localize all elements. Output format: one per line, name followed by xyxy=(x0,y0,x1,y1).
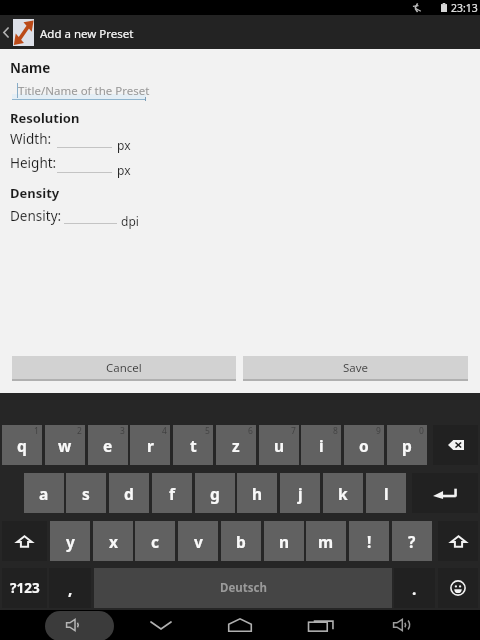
button[interactable]: Cancel xyxy=(12,356,236,382)
staticText: dpi xyxy=(121,213,139,229)
button[interactable]: d xyxy=(109,473,149,513)
staticText: , xyxy=(68,578,73,599)
staticText: q xyxy=(17,435,27,456)
staticText: 7 xyxy=(291,425,296,437)
button[interactable]: z xyxy=(216,425,256,465)
staticText: 2 xyxy=(77,425,82,437)
button[interactable]: r xyxy=(130,425,170,465)
staticText: w xyxy=(58,435,72,456)
staticText: g xyxy=(210,483,220,504)
staticText: Cancel xyxy=(106,360,142,376)
staticText: 23:13 xyxy=(451,1,478,15)
staticText: Deutsch xyxy=(220,580,267,596)
button[interactable]: Shift xyxy=(438,521,478,561)
staticText: e xyxy=(103,435,113,456)
button[interactable]: ?123 xyxy=(2,568,47,608)
staticText: Density: xyxy=(10,207,62,225)
staticText: y xyxy=(66,531,75,552)
button[interactable]: Volume down xyxy=(45,611,114,640)
button[interactable]: Deutsch xyxy=(94,568,392,608)
staticText: Name xyxy=(10,59,51,77)
button[interactable]: h xyxy=(237,473,277,513)
staticText: Width: xyxy=(10,130,52,148)
staticText: Height: xyxy=(10,154,57,172)
button[interactable]: Navigate up xyxy=(0,15,12,49)
staticText: u xyxy=(274,435,285,456)
button[interactable]: b xyxy=(221,521,261,561)
staticText: b xyxy=(236,531,246,552)
button[interactable]: l xyxy=(366,473,406,513)
staticText: 1 xyxy=(34,425,39,437)
staticText: 4 xyxy=(162,425,167,437)
staticText: r xyxy=(147,435,154,456)
staticText: Save xyxy=(343,360,369,376)
button[interactable]: Hide keyboard xyxy=(137,611,185,639)
button[interactable]: w xyxy=(45,425,85,465)
staticText: c xyxy=(151,531,159,552)
staticText: 9 xyxy=(376,425,381,437)
staticText: k xyxy=(338,483,348,504)
staticText: 6 xyxy=(248,425,253,437)
button[interactable]: x xyxy=(93,521,133,561)
button[interactable]: o xyxy=(344,425,384,465)
button[interactable]: y xyxy=(50,521,90,561)
staticText: m xyxy=(318,531,334,552)
button[interactable]: t xyxy=(173,425,213,465)
button[interactable]: s xyxy=(66,473,106,513)
button[interactable]: m xyxy=(306,521,346,561)
staticText: s xyxy=(82,483,90,504)
staticText: Density xyxy=(10,184,60,202)
staticText: ?123 xyxy=(10,579,40,597)
staticText: 3 xyxy=(120,425,125,437)
staticText: o xyxy=(359,435,369,456)
button[interactable]: p xyxy=(387,425,427,465)
staticText: ? xyxy=(408,531,416,552)
staticText: px xyxy=(117,137,131,153)
staticText: d xyxy=(124,483,134,504)
staticText: a xyxy=(39,483,49,504)
staticText: i xyxy=(319,435,324,456)
staticText: 8 xyxy=(333,425,338,437)
button[interactable]: q xyxy=(2,425,42,465)
staticText: t xyxy=(190,435,197,456)
button[interactable]: i xyxy=(301,425,341,465)
button[interactable]: Save xyxy=(243,356,468,382)
button[interactable]: Title/Name of the Preset xyxy=(17,83,157,101)
staticText: . xyxy=(412,578,417,599)
button[interactable]: g xyxy=(195,473,235,513)
staticText: f xyxy=(169,483,175,504)
button[interactable]: Delete xyxy=(433,425,478,465)
button[interactable]: ? xyxy=(392,521,432,561)
staticText: Add a new Preset xyxy=(40,26,134,42)
button[interactable]: Recents xyxy=(297,611,345,639)
button[interactable]: . xyxy=(394,568,435,608)
staticText: p xyxy=(402,435,412,456)
staticText: px xyxy=(117,162,131,178)
button[interactable]: ! xyxy=(349,521,389,561)
button[interactable]: Shift xyxy=(2,521,47,561)
button[interactable]: j xyxy=(280,473,320,513)
button[interactable]: , xyxy=(49,568,91,608)
button[interactable]: u xyxy=(259,425,299,465)
button[interactable]: a xyxy=(24,473,64,513)
staticText: h xyxy=(252,483,263,504)
button[interactable]: k xyxy=(323,473,363,513)
button[interactable]: Enter xyxy=(412,473,478,513)
staticText: 0 xyxy=(419,425,424,437)
staticText: Resolution xyxy=(10,109,80,127)
button[interactable]: f xyxy=(152,473,192,513)
button[interactable]: c xyxy=(135,521,175,561)
button[interactable]: Volume up xyxy=(376,611,424,639)
staticText: v xyxy=(194,531,203,552)
staticText: z xyxy=(232,435,240,456)
staticText: 5 xyxy=(205,425,210,437)
button[interactable]: n xyxy=(264,521,304,561)
staticText: Title/Name of the Preset xyxy=(18,83,150,99)
staticText: l xyxy=(384,483,389,504)
button[interactable]: v xyxy=(178,521,218,561)
staticText: ! xyxy=(367,531,372,552)
button[interactable]: e xyxy=(88,425,128,465)
button[interactable]: Home xyxy=(216,611,264,639)
staticText: n xyxy=(279,531,290,552)
button[interactable]: Emoji xyxy=(438,568,478,608)
